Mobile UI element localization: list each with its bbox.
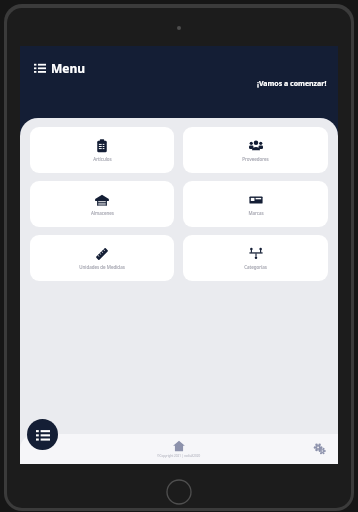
staticText: ©Copyright 2021 | radiuX2020: [157, 454, 201, 458]
staticText: Proveedores: [242, 156, 269, 162]
button[interactable]: Unidades de Medidas: [30, 235, 174, 281]
button[interactable]: Almacenes: [30, 181, 174, 227]
button[interactable]: Marcas: [183, 181, 328, 227]
button[interactable]: Settings: [312, 441, 328, 457]
button[interactable]: Proveedores: [183, 127, 328, 173]
button[interactable]: Menu: [32, 58, 88, 78]
staticText: Marcas: [248, 210, 264, 216]
staticText: ¡Vamos a comenzar!: [257, 79, 327, 89]
staticText: Categorías: [244, 264, 267, 270]
button[interactable]: Categorías: [183, 235, 328, 281]
button[interactable]: Artículos: [30, 127, 174, 173]
staticText: Almacenes: [91, 210, 114, 216]
staticText: Artículos: [93, 156, 112, 162]
button[interactable]: Open menu: [27, 419, 58, 450]
staticText: Menu: [51, 60, 86, 76]
button[interactable]: Home: [145, 440, 213, 458]
staticText: Unidades de Medidas: [79, 264, 125, 270]
